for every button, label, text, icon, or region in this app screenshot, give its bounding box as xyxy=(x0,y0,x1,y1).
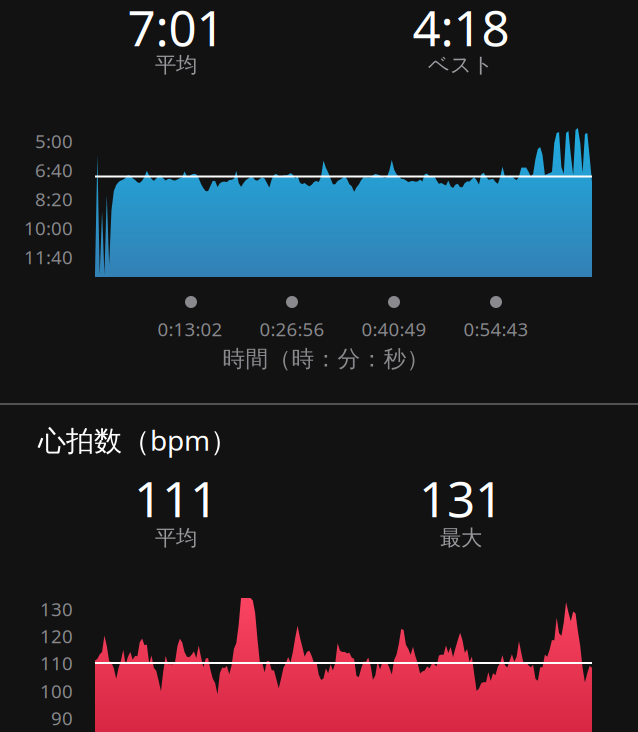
staticText: 4:18 xyxy=(412,0,509,60)
staticText: 130 xyxy=(40,597,73,621)
staticText: 131 xyxy=(419,465,503,531)
staticText: 平均 xyxy=(155,52,197,78)
staticText: 平均 xyxy=(155,525,197,551)
staticText: 110 xyxy=(40,651,73,675)
staticText: 5:00 xyxy=(35,129,73,153)
staticText: 90 xyxy=(51,706,73,730)
staticText: 100 xyxy=(40,679,73,703)
staticText: 0:13:02 xyxy=(157,317,222,341)
staticText: 111 xyxy=(134,465,218,531)
staticText: ベスト xyxy=(428,52,494,78)
staticText: 0:54:43 xyxy=(463,317,528,341)
staticText: 最大 xyxy=(440,525,482,551)
staticText: 6:40 xyxy=(35,158,73,182)
staticText: 時間（時：分：秒） xyxy=(222,345,429,373)
staticText: 11:40 xyxy=(24,245,73,269)
staticText: 10:00 xyxy=(24,216,73,240)
staticText: 心拍数（bpm） xyxy=(38,421,238,459)
button[interactable]: 心拍数（bpm） xyxy=(0,405,638,732)
staticText: 7:01 xyxy=(127,0,224,60)
staticText: 8:20 xyxy=(35,187,73,211)
staticText: 0:40:49 xyxy=(361,317,426,341)
staticText: 120 xyxy=(40,624,73,648)
staticText: 0:26:56 xyxy=(259,317,324,341)
button[interactable]: 7:01 xyxy=(0,0,638,403)
